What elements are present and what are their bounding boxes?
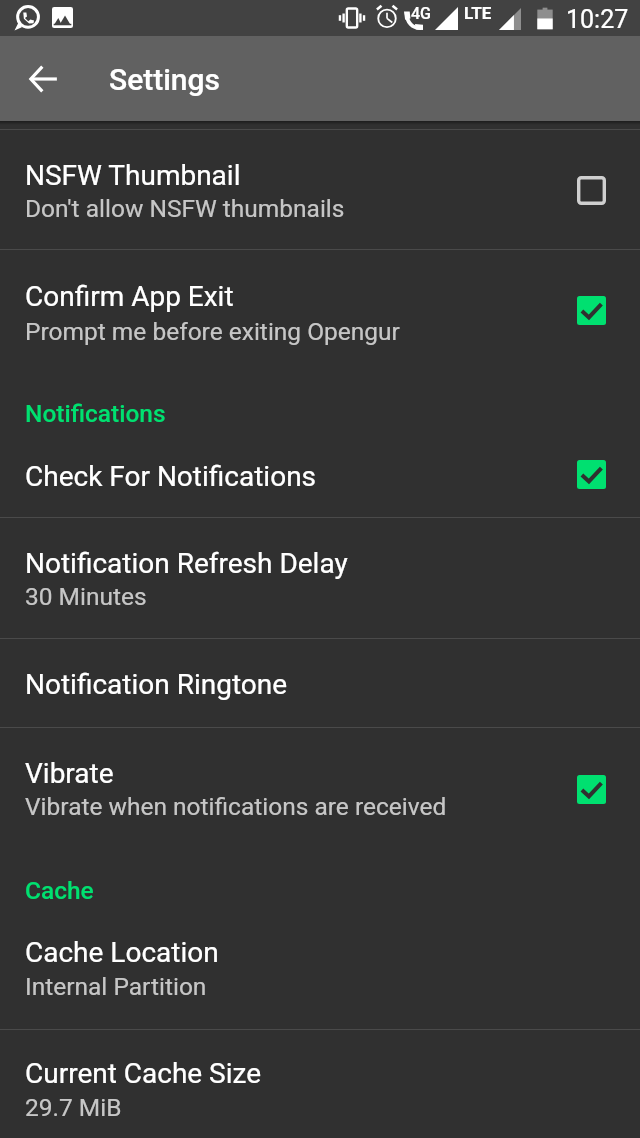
staticText: 29.7 MiB xyxy=(25,1093,122,1122)
button[interactable]: Check For Notifications xyxy=(0,431,640,517)
button[interactable]: Notification Ringtone xyxy=(0,639,640,727)
button[interactable]: Cache Location xyxy=(0,911,640,1029)
staticText: Confirm App Exit xyxy=(25,280,234,313)
button[interactable]: Current Cache Size xyxy=(0,1030,640,1138)
staticText: 4G xyxy=(411,4,431,23)
button[interactable]: Toggle Confirm App Exit xyxy=(571,290,611,330)
button[interactable]: Toggle NSFW Thumbnail xyxy=(571,170,611,210)
staticText: Current Cache Size xyxy=(25,1057,262,1090)
button[interactable]: NSFW Thumbnail xyxy=(0,130,640,249)
staticText: Settings xyxy=(109,62,221,97)
staticText: Notification Ringtone xyxy=(25,668,288,701)
staticText: LTE xyxy=(464,3,492,23)
staticText: Notification Refresh Delay xyxy=(25,547,348,580)
staticText: Vibrate when notifications are received xyxy=(25,792,447,821)
button[interactable]: Vibrate xyxy=(0,728,640,849)
staticText: Cache Location xyxy=(25,936,219,969)
staticText: 30 Minutes xyxy=(25,582,147,611)
staticText: NSFW Thumbnail xyxy=(25,159,241,192)
staticText: Notifications xyxy=(25,399,166,428)
staticText: Internal Partition xyxy=(25,972,207,1001)
button[interactable]: Toggle Check For Notifications xyxy=(571,454,611,494)
staticText: Vibrate xyxy=(25,757,114,790)
button[interactable]: Notification Refresh Delay xyxy=(0,518,640,638)
button[interactable]: Toggle Vibrate xyxy=(571,769,611,809)
button[interactable]: Back xyxy=(15,50,73,108)
button[interactable]: Confirm App Exit xyxy=(0,250,640,370)
staticText: 10:27 xyxy=(566,5,629,34)
staticText: Prompt me before exiting Opengur xyxy=(25,317,400,346)
staticText: Check For Notifications xyxy=(25,460,317,493)
staticText: Don't allow NSFW thumbnails xyxy=(25,194,345,223)
staticText: Cache xyxy=(25,876,94,905)
